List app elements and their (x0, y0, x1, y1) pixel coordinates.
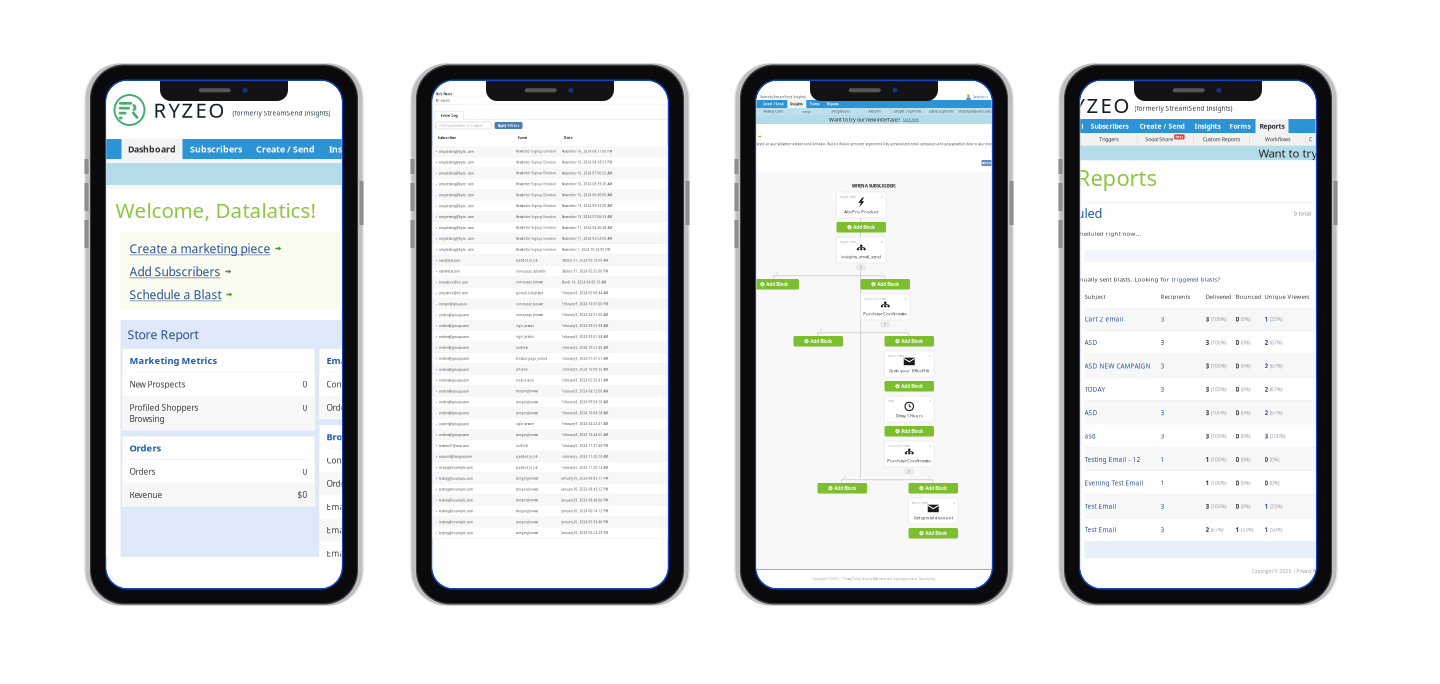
staticText: (100%) (1270, 433, 1285, 439)
button[interactable]: Add Block (908, 483, 958, 493)
button[interactable]: Insights (787, 100, 806, 108)
button[interactable]: Add Block (793, 336, 843, 346)
staticText: Bounced (1235, 292, 1261, 300)
button[interactable]: Reports (1255, 119, 1288, 133)
staticText: ASD NEW CAMPAIGN (1084, 361, 1150, 370)
staticText: • (435, 181, 437, 187)
staticText: 2 (1264, 385, 1268, 394)
button[interactable]: Create a marketing piece (129, 240, 281, 257)
button[interactable]: Add Subscribers (129, 263, 231, 280)
staticText: (0%) (1241, 456, 1250, 463)
staticText: testing@example.com (439, 487, 473, 491)
button[interactable]: Forms (807, 100, 823, 108)
button[interactable]: Dashboard (121, 139, 182, 159)
staticText: Delivered (1205, 292, 1231, 300)
staticText: category_browse (515, 520, 538, 524)
staticText: February 9, 2024 10:51:40 AM (561, 346, 608, 350)
staticText: Add Block (901, 383, 923, 389)
staticText: testmail1@corp.com (439, 444, 469, 448)
staticText: homepage_browse (515, 280, 543, 284)
staticText: Orde (326, 402, 345, 413)
staticText: November 11, 2024 03:46:40 AM (561, 226, 612, 230)
button[interactable]: Add Block (836, 222, 886, 232)
staticText: All events (435, 98, 449, 102)
button[interactable]: Insights (1190, 119, 1224, 133)
staticText: Apply Filters (497, 123, 519, 128)
staticText: 0 (1235, 338, 1239, 347)
staticText: × (881, 239, 883, 244)
button[interactable]: Forms (1225, 119, 1254, 133)
staticText: (0%) (1241, 409, 1250, 416)
button[interactable]: l (1080, 119, 1084, 133)
staticText: 2 (1205, 525, 1209, 534)
staticText: Newsletter Signup Emotion (515, 215, 556, 219)
button[interactable]: Create / Send (759, 100, 786, 108)
staticText: Add Block (925, 530, 947, 536)
staticText: 3 (1160, 315, 1164, 323)
staticText: (0%) (1270, 479, 1279, 486)
staticText: • (435, 519, 437, 525)
staticText: Subscriber (437, 135, 456, 140)
staticText: anders@groups.com (439, 313, 469, 317)
staticText: Conv (326, 455, 345, 466)
button[interactable]: Add Block (884, 426, 934, 436)
staticText: Trigger name (839, 195, 855, 198)
staticText: January 30, 2024 08:43:12 PM (561, 487, 608, 491)
staticText: Insi (329, 143, 345, 155)
staticText: • (435, 443, 437, 448)
staticText: uled (1076, 204, 1102, 222)
staticText: Newsletter Signup Emotion (515, 182, 556, 186)
staticText: Create / Send (1139, 121, 1184, 131)
staticText: category_browse (515, 531, 538, 535)
staticText: February 8, 2024 09:54:10 AM (561, 400, 608, 404)
staticText: checkout_page_ended (515, 357, 547, 360)
staticText: • (435, 367, 437, 372)
staticText: login_session (515, 335, 534, 339)
staticText: Click here (903, 117, 919, 122)
button[interactable]: Subscribers (183, 139, 248, 159)
staticText: Orders (129, 441, 161, 454)
staticText: (33%) (1241, 526, 1253, 533)
button[interactable]: Reports (824, 100, 842, 108)
staticText: SAVE & CLOSE (982, 161, 999, 165)
staticText: Dashboard (128, 143, 176, 155)
button[interactable]: Add Block (817, 483, 867, 493)
button[interactable]: Add Block (749, 279, 799, 289)
staticText: Newsletter Signup Emotion (515, 149, 556, 153)
button[interactable]: Apply Filters (494, 122, 522, 129)
staticText: or (883, 323, 886, 326)
staticText: 3 (1205, 361, 1209, 370)
staticText: or (859, 266, 862, 269)
staticText: ASD (1084, 408, 1097, 417)
button[interactable]: Event Log (434, 111, 463, 120)
staticText: homepage_subscribe (515, 269, 546, 273)
staticText: Purchase Confirmatio (887, 458, 931, 463)
staticText: Tracking Code (763, 110, 783, 113)
staticText: anders@groups.com (439, 346, 469, 350)
staticText: Ema (326, 548, 344, 559)
button[interactable]: Add Block (908, 528, 958, 538)
staticText: 3 (1160, 502, 1164, 511)
staticText: • (435, 225, 437, 230)
button[interactable]: Create / Send (1134, 119, 1189, 133)
staticText: February 9, 2024 09:51:38 AM (561, 335, 608, 339)
staticText: megan@groups.io (439, 302, 467, 306)
button[interactable]: Insi (322, 139, 351, 159)
staticText: testing@example.com (439, 509, 473, 513)
staticText: anders@groups.com (439, 378, 469, 382)
button[interactable]: Schedule a Blast (129, 286, 232, 303)
button[interactable]: Add Block (884, 336, 934, 346)
button[interactable]: Add Block (860, 279, 910, 289)
staticText: November 7, 2024 10:34:00 PM (561, 248, 610, 252)
staticText: Yes (843, 475, 846, 478)
staticText: Event (517, 135, 527, 140)
staticText: 3 (1264, 432, 1268, 440)
button[interactable]: Subscribers (1085, 119, 1133, 133)
staticText: purchase (515, 444, 528, 448)
button[interactable]: Create / Send (249, 139, 321, 159)
button[interactable]: Add Block (884, 381, 934, 391)
staticText: category_browse (515, 476, 538, 480)
staticText: Conv (326, 379, 345, 390)
staticText: February 8, 2024 10:04:18 AM (561, 411, 608, 415)
staticText: (50%) (1270, 526, 1282, 533)
